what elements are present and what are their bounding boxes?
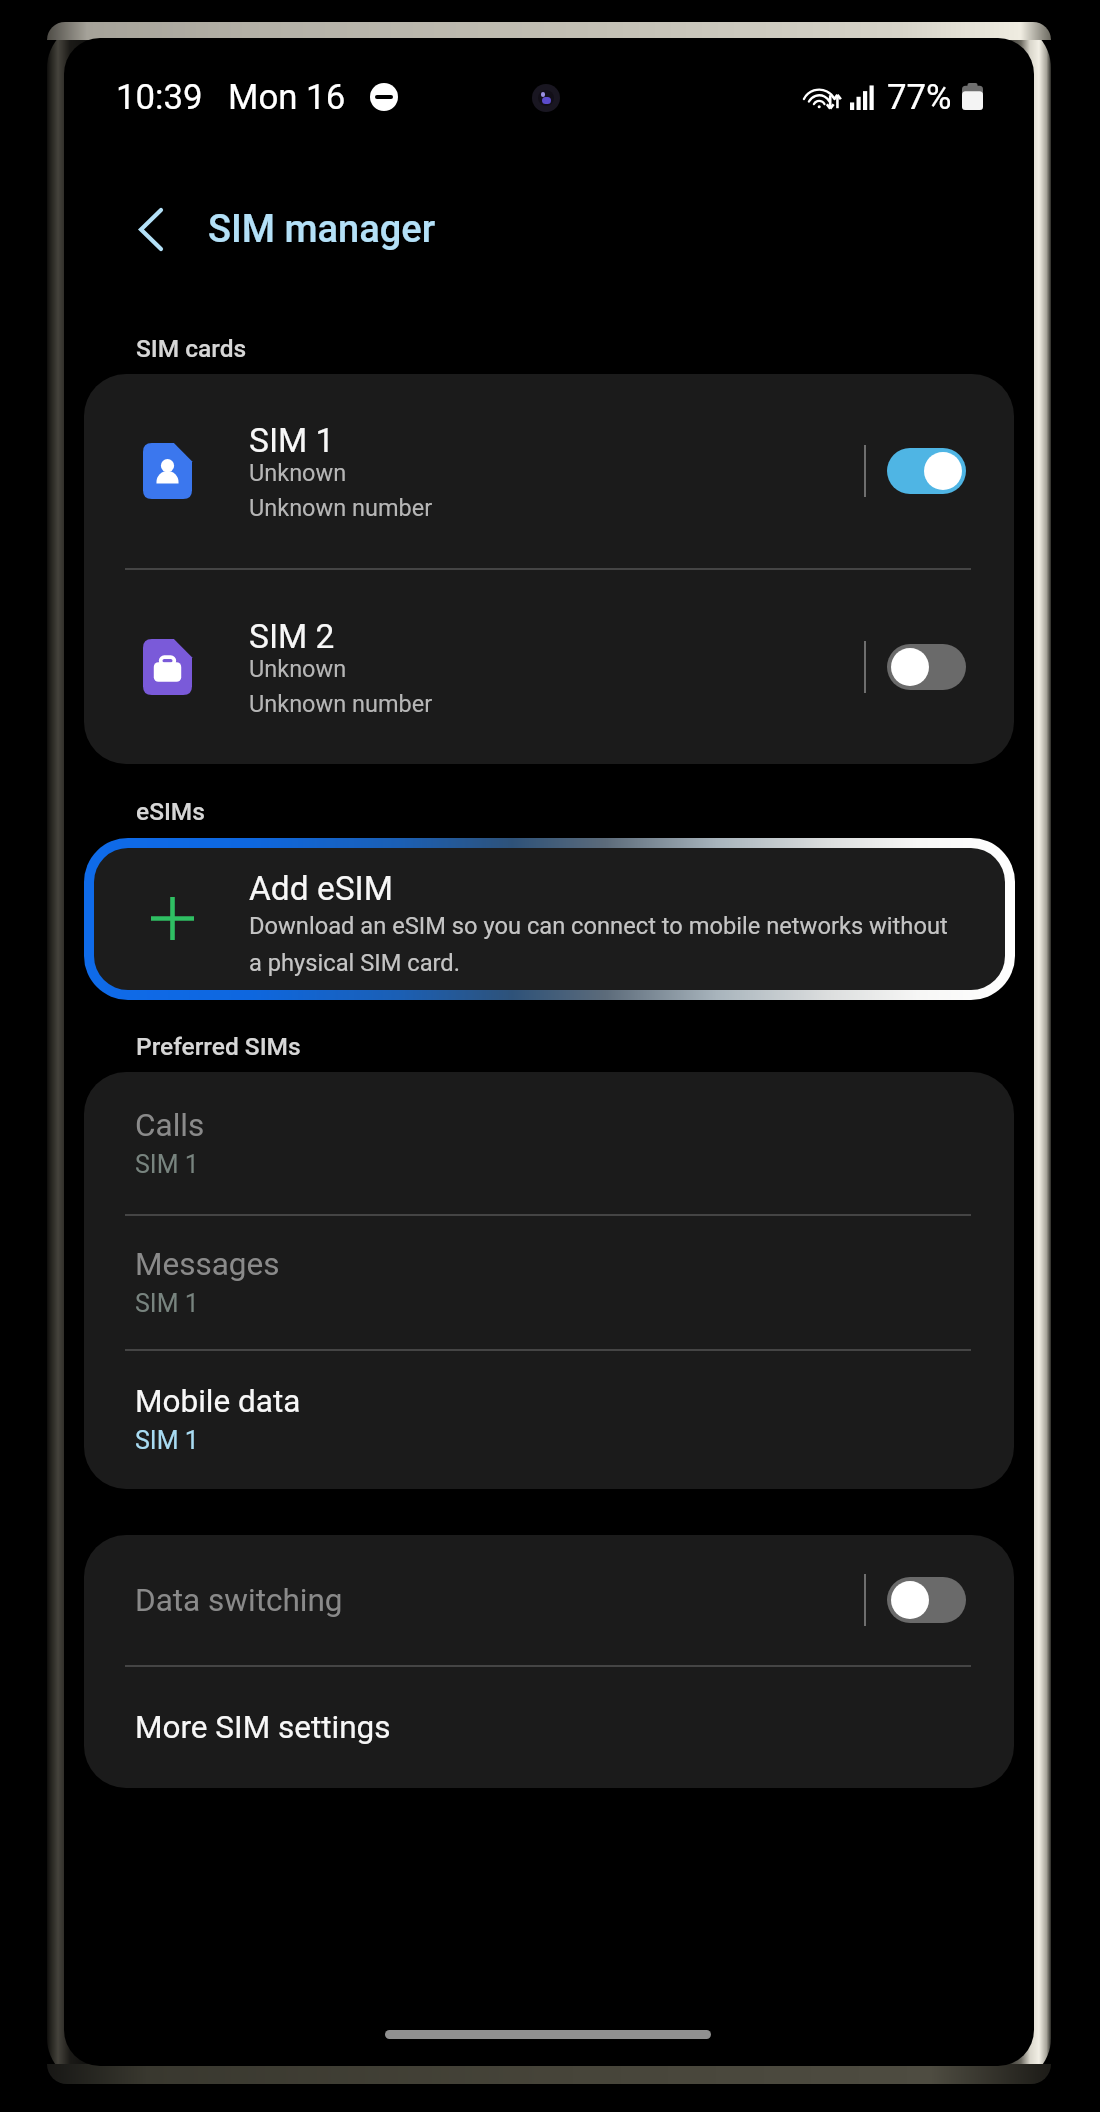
button[interactable]: Data switching [84,1535,1014,1665]
staticText: Add eSIM [249,869,393,908]
staticText: Mon 16 [228,77,346,118]
button[interactable]: Mobile data [84,1349,1014,1489]
staticText: Download an eSIM so you can connect to m… [249,912,948,940]
button[interactable]: Switch off [887,1577,966,1623]
staticText: SIM 1 [135,1426,199,1455]
staticText: a physical SIM card. [249,949,460,977]
staticText: SIM 2 [249,617,335,656]
staticText: SIM 1 [135,1289,199,1318]
button[interactable]: Messages [84,1214,1014,1349]
staticText: SIM 1 [249,421,335,460]
staticText: Unknown [249,655,347,683]
button[interactable]: Calls [84,1072,1014,1214]
staticText: More SIM settings [135,1709,391,1746]
button[interactable]: SIM 1 [84,374,1014,568]
button[interactable]: Navigate back [113,191,189,267]
staticText: Calls [135,1107,205,1144]
staticText: Unknown number [249,494,433,522]
staticText: SIM cards [136,334,247,363]
staticText: Unknown [249,459,347,487]
staticText: Data switching [135,1582,343,1619]
staticText: SIM 1 [135,1150,199,1179]
button[interactable]: Switch on [887,448,966,494]
staticText: Preferred SIMs [136,1032,301,1061]
button[interactable]: SIM 2 [84,570,1014,764]
staticText: 77% [887,77,952,118]
staticText: eSIMs [136,797,205,826]
button[interactable]: Add eSIM [94,848,1005,990]
staticText: Messages [135,1246,280,1283]
staticText: SIM manager [208,207,436,252]
staticText: Mobile data [135,1383,301,1420]
staticText: 10:39 [116,77,203,118]
button[interactable]: More SIM settings [84,1666,1014,1788]
button[interactable]: Switch off [887,644,966,690]
staticText: Unknown number [249,690,433,718]
